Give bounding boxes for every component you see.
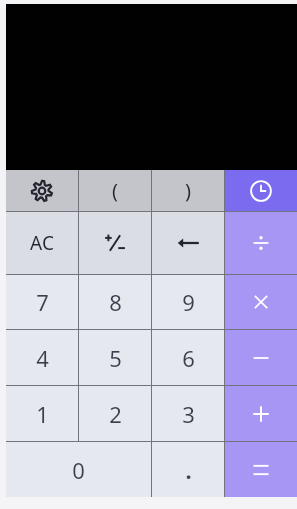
button[interactable]: . — [152, 442, 224, 497]
button[interactable]: Equals — [225, 442, 297, 497]
staticText: 7 — [36, 287, 49, 317]
button[interactable]: 3 — [152, 386, 224, 441]
staticText: 5 — [109, 343, 122, 373]
staticText: 1 — [36, 399, 49, 429]
staticText: . — [185, 455, 192, 485]
button[interactable]: Plus minus — [79, 212, 151, 274]
staticText: 8 — [109, 287, 122, 317]
staticText: 3 — [182, 399, 195, 429]
staticText: AC — [30, 230, 54, 256]
button[interactable]: 8 — [79, 275, 151, 329]
button[interactable]: ) — [152, 170, 224, 211]
staticText: 4 — [36, 343, 49, 373]
button[interactable]: History — [225, 170, 297, 211]
button[interactable]: 4 — [6, 330, 78, 385]
button[interactable]: 2 — [79, 386, 151, 441]
staticText: 2 — [109, 399, 122, 429]
button[interactable]: Operator — [225, 386, 297, 441]
button[interactable]: 7 — [6, 275, 78, 329]
staticText: ) — [185, 177, 191, 204]
button[interactable]: 1 — [6, 386, 78, 441]
button[interactable]: Backspace — [152, 212, 224, 274]
button[interactable]: 5 — [79, 330, 151, 385]
staticText: 9 — [182, 287, 195, 317]
button[interactable]: ( — [79, 170, 151, 211]
staticText: ( — [112, 177, 118, 204]
button[interactable]: 6 — [152, 330, 224, 385]
button[interactable]: Settings — [6, 170, 78, 211]
button[interactable]: Operator — [225, 330, 297, 385]
button[interactable]: AC — [6, 212, 78, 274]
staticText: 0 — [72, 455, 85, 485]
button[interactable]: 0 — [6, 442, 151, 497]
staticText: 6 — [182, 343, 195, 373]
button[interactable]: Operator — [225, 275, 297, 329]
button[interactable]: 9 — [152, 275, 224, 329]
button[interactable]: Divide — [225, 212, 297, 274]
